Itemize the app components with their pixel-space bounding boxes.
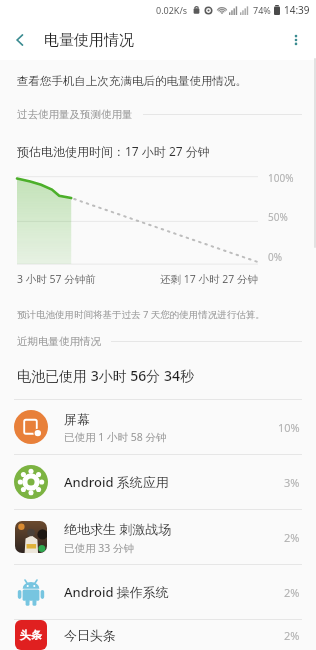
staticText: 已使用 1 小时 58 分钟	[64, 430, 167, 444]
staticText: 电池已使用 3小时 56分 34秒	[17, 366, 194, 385]
button[interactable]: 头条	[0, 620, 316, 650]
button[interactable]: Android 操作系统	[0, 565, 316, 619]
staticText: 近期电量使用情况	[17, 335, 101, 348]
staticText: Android 系统应用	[64, 473, 169, 491]
staticText: 0.02K/s	[156, 4, 188, 16]
staticText: 屏幕	[64, 411, 90, 427]
staticText: 100%	[268, 171, 294, 185]
staticText: 3%	[284, 475, 300, 490]
staticText: 3 小时 57 分钟前	[17, 272, 96, 286]
staticText: 74%	[253, 4, 271, 16]
staticText: 还剩 17 小时 27 分钟	[160, 272, 258, 286]
staticText: 预估电池使用时间：17 小时 27 分钟	[17, 143, 210, 159]
staticText: 14:39	[284, 3, 310, 17]
staticText: Android 操作系统	[64, 583, 169, 601]
staticText: 预计电池使用时间将基于过去 7 天您的使用情况进行估算。	[17, 308, 265, 321]
staticText: 2%	[284, 585, 300, 600]
staticText: 2%	[284, 628, 300, 643]
staticText: 0%	[268, 250, 283, 264]
button[interactable]: 绝地求生 刺激战场	[0, 510, 316, 564]
staticText: 查看您手机自上次充满电后的电量使用情况。	[17, 74, 247, 88]
button[interactable]: Back	[0, 20, 40, 60]
staticText: 头条	[20, 628, 42, 642]
staticText: 电量使用情况	[44, 31, 134, 50]
button[interactable]: Android 系统应用	[0, 455, 316, 509]
staticText: 过去使用量及预测使用量	[17, 108, 133, 121]
staticText: 10%	[278, 420, 300, 435]
staticText: 2%	[284, 530, 300, 545]
button[interactable]: 屏幕	[0, 400, 316, 454]
staticText: 50%	[268, 210, 288, 224]
staticText: 绝地求生 刺激战场	[64, 520, 172, 538]
staticText: 今日头条	[64, 627, 116, 643]
staticText: 已使用 33 分钟	[64, 541, 134, 555]
button[interactable]: More options	[276, 20, 316, 60]
